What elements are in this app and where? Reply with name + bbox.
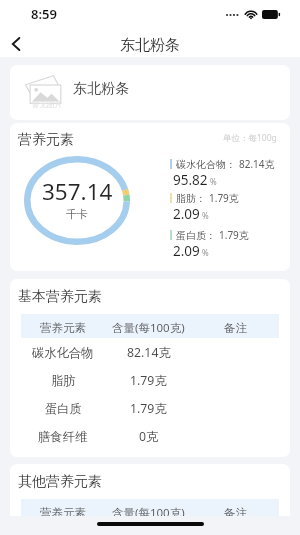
staticText: 东北粉条 (73, 80, 129, 98)
staticText: 暂无图片 (32, 100, 62, 109)
staticText: % (202, 247, 209, 258)
staticText: % (210, 176, 217, 187)
staticText: 0克 (139, 428, 159, 445)
staticText: 备注 (224, 321, 247, 335)
staticText: 基本营养元素 (18, 288, 102, 306)
staticText: 82.14克 (239, 157, 275, 171)
staticText: 脂肪 (51, 373, 76, 388)
staticText: 1.79克 (219, 228, 249, 242)
staticText: 蛋白质： (176, 228, 219, 242)
staticText: 95.82 (173, 171, 208, 189)
staticText: 营养元素 (40, 506, 86, 516)
button[interactable]: Back (0, 28, 34, 57)
staticText: 82.14克 (127, 344, 171, 361)
staticText: 1.79克 (209, 191, 239, 205)
staticText: 东北粉条 (120, 36, 180, 55)
staticText: 含量(每100克) (112, 505, 185, 516)
staticText: 千卡 (66, 207, 88, 221)
staticText: 蛋白质 (45, 401, 82, 416)
staticText: 营养元素 (40, 321, 86, 335)
staticText: 2.09 (173, 205, 200, 223)
staticText: 含量(每100克) (112, 320, 185, 336)
staticText: 8:59 (31, 5, 57, 23)
staticText: 其他营养元素 (18, 473, 102, 491)
staticText: 2.09 (173, 242, 200, 260)
staticText: 营养元素 (18, 131, 74, 149)
staticText: 357.14 (42, 176, 113, 207)
staticText: % (202, 210, 209, 221)
staticText: 单位：每100g (223, 132, 277, 144)
staticText: 膳食纤维 (38, 429, 88, 444)
staticText: 1.79克 (130, 372, 167, 389)
staticText: 1.79克 (130, 400, 167, 417)
staticText: 碳水化合物 (32, 345, 94, 360)
staticText: 备注 (224, 506, 247, 516)
staticText: 碳水化合物： (176, 157, 239, 171)
staticText: 脂肪： (176, 191, 209, 205)
